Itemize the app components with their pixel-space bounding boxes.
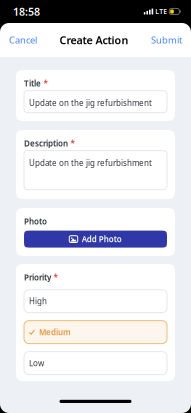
staticText: Description: [24, 138, 68, 149]
staticText: Update on the jig refurbishment: [29, 98, 152, 108]
button[interactable]: Update on the jig refurbishment: [24, 91, 167, 113]
staticText: *: [43, 78, 47, 89]
button[interactable]: Update on the jig refurbishment: [24, 151, 167, 190]
staticText: Priority: [24, 272, 51, 283]
staticText: Low: [29, 358, 44, 368]
staticText: Add Photo: [82, 234, 122, 244]
button[interactable]: High: [24, 290, 167, 313]
staticText: Photo: [24, 216, 47, 227]
button[interactable]: Cancel: [9, 23, 37, 57]
button[interactable]: Low: [24, 352, 167, 375]
button[interactable]: Add Photo: [24, 231, 167, 248]
staticText: Submit: [151, 34, 182, 46]
staticText: Medium: [39, 327, 71, 337]
staticText: Create Action: [59, 33, 128, 47]
staticText: *: [70, 138, 74, 149]
staticText: High: [29, 296, 47, 306]
button[interactable]: Submit: [151, 23, 182, 57]
staticText: LTE: [155, 7, 167, 16]
staticText: 18:58: [13, 4, 40, 19]
staticText: Title: [24, 78, 41, 89]
staticText: Update on the jig refurbishment: [29, 158, 152, 168]
button[interactable]: Medium: [24, 321, 167, 344]
staticText: Cancel: [9, 34, 37, 46]
staticText: *: [53, 272, 57, 283]
